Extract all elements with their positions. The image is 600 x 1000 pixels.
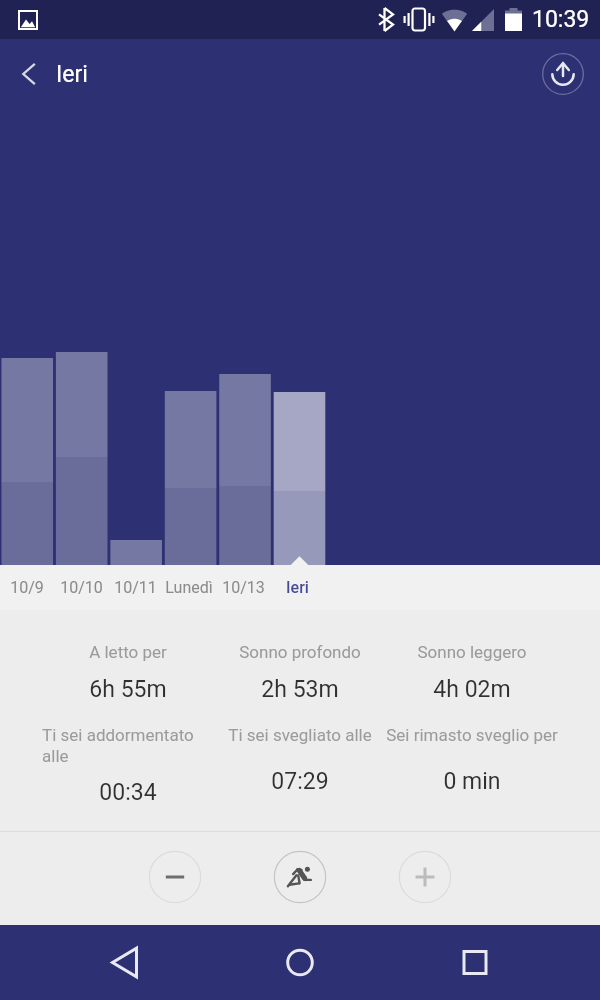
staticText: A letto per xyxy=(42,642,214,662)
button[interactable]: Activity xyxy=(273,850,327,904)
button[interactable]: Decrease xyxy=(148,850,202,904)
button[interactable]: Recent apps xyxy=(400,925,600,1000)
staticText: Sonno profondo xyxy=(214,642,386,662)
staticText: Lunedì xyxy=(165,578,213,597)
staticText: Ti sei addormentato alle xyxy=(42,725,214,767)
button[interactable]: 10/13 xyxy=(216,565,270,610)
staticText: Sonno leggero xyxy=(386,642,558,662)
button[interactable]: Lunedì xyxy=(162,565,216,610)
staticText: 10/9 xyxy=(10,578,44,597)
staticText: 10/13 xyxy=(222,578,265,597)
button[interactable]: 10/10 xyxy=(54,565,108,610)
button[interactable]: 10/11 xyxy=(108,565,162,610)
staticText: 07:29 xyxy=(271,768,329,795)
button[interactable]: Sei rimasto sveglio per xyxy=(386,725,558,795)
button[interactable]: 10/9 xyxy=(0,565,54,610)
staticText: 2h 53m xyxy=(261,676,339,703)
button[interactable]: Share xyxy=(539,50,587,98)
button[interactable]: Ti sei addormentato alle xyxy=(42,725,214,806)
staticText: 6h 55m xyxy=(89,676,167,703)
button[interactable]: Home xyxy=(200,925,400,1000)
button[interactable]: Ieri xyxy=(270,565,324,610)
button[interactable]: Ti sei svegliato alle xyxy=(214,725,386,795)
staticText: 10:39 xyxy=(532,6,590,33)
staticText: Ieri xyxy=(286,578,309,597)
button[interactable]: Back xyxy=(4,50,52,98)
staticText: Ti sei svegliato alle xyxy=(214,725,386,745)
staticText: Ieri xyxy=(56,61,88,88)
staticText: 00:34 xyxy=(99,779,157,806)
staticText: 10/11 xyxy=(114,578,157,597)
button[interactable]: Sonno profondo xyxy=(214,642,386,703)
button[interactable]: A letto per xyxy=(42,642,214,703)
staticText: 10/10 xyxy=(60,578,103,597)
button[interactable]: Increase xyxy=(398,850,452,904)
staticText: Sei rimasto sveglio per xyxy=(386,725,558,745)
staticText: 0 min xyxy=(443,768,501,795)
staticText: 4h 02m xyxy=(433,676,511,703)
button[interactable]: Sonno leggero xyxy=(386,642,558,703)
button[interactable]: Back xyxy=(0,925,200,1000)
